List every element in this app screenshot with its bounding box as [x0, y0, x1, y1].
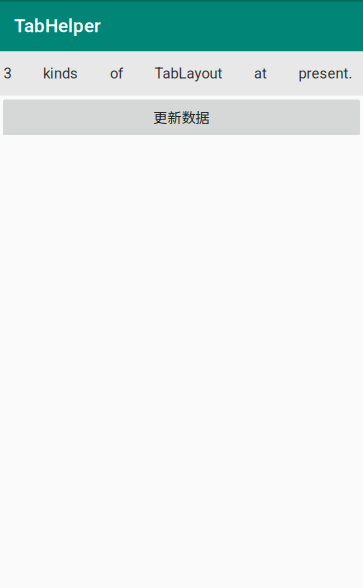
staticText: present.: [298, 65, 352, 82]
staticText: 3: [3, 65, 11, 82]
button[interactable]: 3: [0, 51, 27, 95]
staticText: TabLayout: [154, 65, 222, 82]
button[interactable]: TabLayout: [139, 51, 238, 95]
button[interactable]: 更新数据: [3, 99, 360, 134]
staticText: at: [254, 65, 267, 82]
button[interactable]: kinds: [27, 51, 94, 95]
staticText: TabHelper: [14, 15, 101, 37]
staticText: kinds: [43, 65, 78, 82]
button[interactable]: at: [238, 51, 283, 95]
button[interactable]: of: [94, 51, 139, 95]
staticText: of: [110, 65, 123, 82]
staticText: 更新数据: [153, 107, 209, 127]
button[interactable]: present.: [283, 51, 363, 95]
